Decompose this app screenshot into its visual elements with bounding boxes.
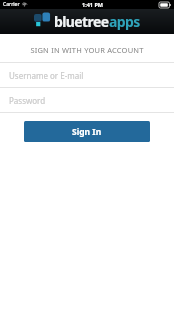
other: Battery [159,2,171,8]
staticText: Username or E-mail [9,70,84,81]
staticText: bluetree [54,12,109,31]
staticText: Sign In [72,126,102,138]
staticText: Carrier [3,1,20,8]
staticText: Password [9,95,46,106]
staticText: 1:41 PM [82,1,104,8]
other: Wi-Fi [22,2,27,7]
button[interactable]: Username or E-mail [0,63,174,87]
staticText: apps [109,12,140,31]
staticText: SIGN IN WITH YOUR ACCOUNT [0,45,174,55]
button[interactable]: Password [0,88,174,112]
button[interactable]: Sign In [24,121,150,142]
